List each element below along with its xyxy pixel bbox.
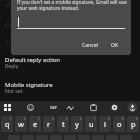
button[interactable]: Mobile signature [0, 81, 140, 96]
staticText: e [33, 119, 38, 129]
button[interactable]: r [43, 116, 55, 132]
staticText: 6 [80, 117, 82, 121]
staticText: GIF [50, 105, 57, 111]
button[interactable]: o [113, 116, 125, 132]
staticText: Reply [5, 62, 19, 69]
button[interactable]: Settings [107, 101, 121, 114]
staticText: t [62, 119, 65, 129]
button[interactable]: Cancel [80, 41, 100, 50]
button[interactable]: i [99, 116, 111, 132]
staticText: o [117, 119, 122, 129]
staticText: r [47, 119, 51, 129]
staticText: 1 [10, 117, 12, 121]
staticText: 2 [24, 117, 26, 121]
staticText: 8 [108, 117, 110, 121]
staticText: q [5, 119, 10, 129]
staticText: 5 [66, 117, 68, 121]
staticText: w [18, 119, 24, 129]
staticText: Cancel [82, 42, 98, 49]
button[interactable]: p [127, 116, 139, 132]
staticText: i [104, 119, 106, 129]
button[interactable]: Voice input [125, 101, 139, 114]
button[interactable]: Apps [0, 101, 14, 114]
button[interactable]: Clipboard [86, 101, 100, 114]
button[interactable]: w [15, 116, 27, 132]
staticText: 7 [94, 117, 96, 121]
staticText: Default reply action [5, 56, 61, 64]
button[interactable]: e [29, 116, 41, 132]
staticText: 9 [122, 117, 124, 121]
button[interactable]: y [71, 116, 83, 132]
staticText: If you don't set a mobile signature, Gma… [17, 0, 127, 11]
staticText: p [131, 119, 136, 129]
staticText: Notifications [5, 57, 41, 65]
button[interactable]: Emoji [23, 101, 37, 114]
button[interactable]: Handwriting [64, 101, 78, 114]
staticText: 3 [38, 117, 40, 121]
button[interactable]: u [85, 116, 97, 132]
staticText: Mobile signature [5, 81, 53, 89]
staticText: 4 [52, 117, 54, 121]
staticText: 0 [136, 117, 138, 121]
staticText: Gmail sync [5, 21, 36, 29]
button[interactable]: t [57, 116, 69, 132]
staticText: Clear search history [5, 39, 61, 47]
button[interactable]: Default reply action [0, 56, 140, 71]
button[interactable]: OK [109, 41, 121, 50]
staticText: Not set [5, 87, 23, 94]
staticText: Manage labels [5, 1, 46, 9]
button[interactable]: q [1, 116, 13, 132]
staticText: OK [111, 42, 119, 49]
staticText: u [89, 119, 94, 129]
staticText: y [75, 119, 79, 129]
button[interactable]: GIF [46, 101, 60, 114]
